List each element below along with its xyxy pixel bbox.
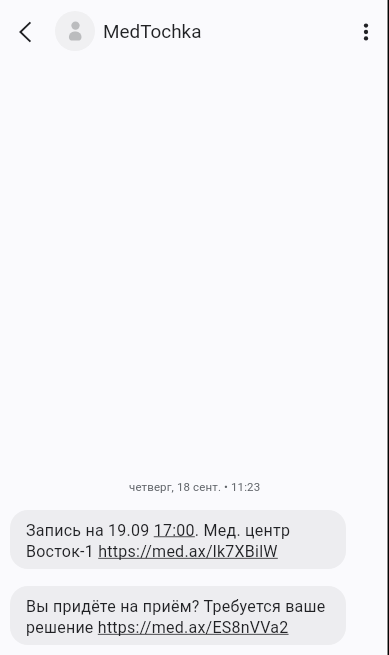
button[interactable]: More options bbox=[349, 15, 383, 49]
staticText: MedTochka bbox=[103, 20, 202, 42]
button[interactable]: MedTochka bbox=[55, 11, 194, 51]
button[interactable]: Back bbox=[9, 15, 43, 49]
staticText: Вы придёте на приём? Требуется ваше реше… bbox=[26, 597, 330, 637]
button[interactable]: Вы придёте на приём? Требуется ваше реше… bbox=[10, 586, 346, 645]
staticText: Запись на 19.09 17:00. Мед. центр Восток… bbox=[26, 521, 330, 561]
staticText: четверг, 18 сент. • 11:23 bbox=[129, 480, 261, 493]
button[interactable]: Запись на 19.09 17:00. Мед. центр Восток… bbox=[10, 510, 346, 569]
